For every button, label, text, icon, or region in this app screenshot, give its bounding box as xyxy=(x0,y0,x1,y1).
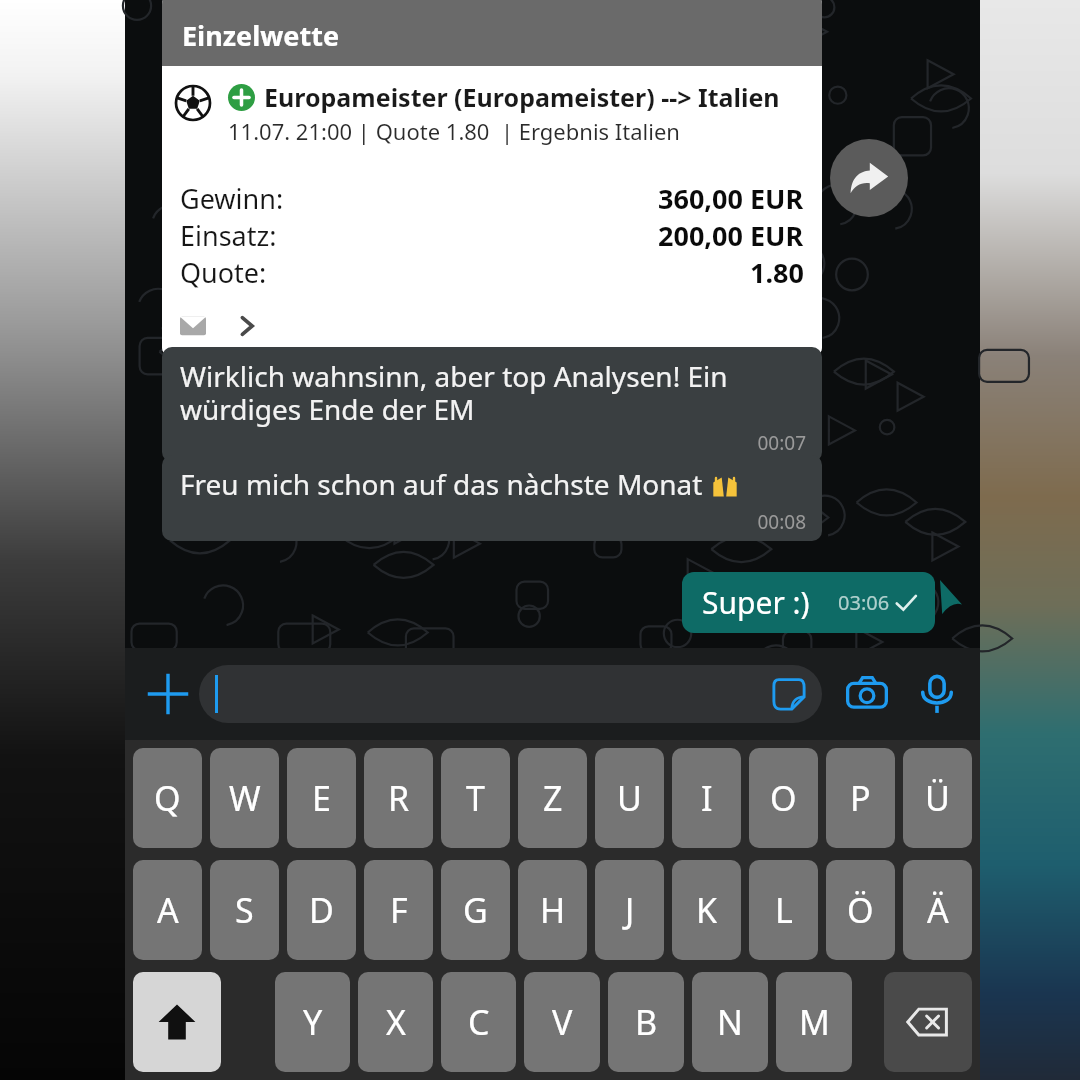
button[interactable]: Ä xyxy=(903,860,972,960)
staticText: K xyxy=(696,887,718,933)
staticText: X xyxy=(386,999,406,1045)
staticText: F xyxy=(390,887,408,933)
staticText: Wirklich wahnsinn, aber top Analysen! Ei… xyxy=(180,357,728,428)
staticText: 11.07. 21:00 | Quote 1.80 | Ergebnis Ita… xyxy=(228,116,680,146)
staticText: Quote: xyxy=(180,254,267,291)
button[interactable]: L xyxy=(749,860,818,960)
button[interactable]: Attach xyxy=(137,663,199,725)
button[interactable]: O xyxy=(749,748,818,848)
staticText: 360,00 EUR xyxy=(658,180,804,217)
button[interactable]: Super :) xyxy=(682,572,935,633)
staticText: 00:07 xyxy=(180,430,806,456)
button[interactable]: D xyxy=(287,860,356,960)
button[interactable]: K xyxy=(672,860,741,960)
staticText: P xyxy=(850,775,871,821)
button[interactable]: N xyxy=(692,972,768,1072)
staticText: Europameister (Europameister) --> Italie… xyxy=(264,80,780,114)
staticText: D xyxy=(309,887,334,933)
staticText: Gewinn: xyxy=(180,180,284,217)
staticText: J xyxy=(625,887,635,933)
button[interactable]: Backspace xyxy=(884,972,972,1072)
staticText: 200,00 EUR xyxy=(658,217,804,254)
staticText: Super :) xyxy=(702,582,810,623)
button[interactable]: E xyxy=(287,748,356,848)
staticText: Ä xyxy=(927,887,949,933)
button[interactable]: Z xyxy=(518,748,587,848)
button[interactable]: J xyxy=(595,860,664,960)
staticText: Ö xyxy=(847,887,874,933)
staticText: Ü xyxy=(925,775,950,821)
staticText: S xyxy=(235,887,254,933)
staticText: Einsatz: xyxy=(180,217,277,254)
staticText: T xyxy=(466,775,485,821)
staticText: Freu mich schon auf das nàchste Monat xyxy=(180,465,710,503)
staticText: V xyxy=(552,999,573,1045)
staticText: Einzelwette xyxy=(182,17,340,54)
button[interactable]: Freu mich schon auf das nàchste Monat xyxy=(162,455,822,541)
button[interactable]: Shift xyxy=(133,972,221,1072)
button[interactable]: P xyxy=(826,748,895,848)
button[interactable]: M xyxy=(776,972,852,1072)
staticText: M xyxy=(799,999,830,1045)
button[interactable]: A xyxy=(133,860,202,960)
staticText: Z xyxy=(543,775,563,821)
staticText: U xyxy=(617,775,642,821)
button[interactable]: Wirklich wahnsinn, aber top Analysen! Ei… xyxy=(162,347,822,462)
button[interactable]: Camera xyxy=(836,663,898,725)
staticText: R xyxy=(388,775,410,821)
button[interactable]: V xyxy=(524,972,600,1072)
staticText: O xyxy=(770,775,797,821)
button[interactable]: Q xyxy=(133,748,202,848)
button[interactable]: G xyxy=(441,860,510,960)
button[interactable]: W xyxy=(210,748,279,848)
button[interactable]: U xyxy=(595,748,664,848)
staticText: C xyxy=(468,999,490,1045)
staticText: N xyxy=(717,999,743,1045)
staticText: Y xyxy=(303,999,323,1045)
staticText: 03:06 xyxy=(838,589,890,616)
staticText: B xyxy=(635,999,658,1045)
button[interactable]: Share xyxy=(830,139,908,217)
staticText: A xyxy=(157,887,179,933)
staticText: H xyxy=(540,887,566,933)
button[interactable]: B xyxy=(608,972,684,1072)
button[interactable]: H xyxy=(518,860,587,960)
staticText: I xyxy=(701,775,713,821)
button[interactable]: F xyxy=(364,860,433,960)
button[interactable]: Ö xyxy=(826,860,895,960)
staticText: G xyxy=(463,887,488,933)
button[interactable]: Sticker xyxy=(770,675,808,713)
staticText: L xyxy=(775,887,793,933)
button[interactable]: I xyxy=(672,748,741,848)
staticText: 00:08 xyxy=(180,509,806,535)
button[interactable]: Einzelwette xyxy=(162,0,822,357)
button[interactable]: T xyxy=(441,748,510,848)
button[interactable]: Sticker xyxy=(199,665,822,723)
staticText: W xyxy=(229,775,261,821)
button[interactable]: R xyxy=(364,748,433,848)
staticText: Q xyxy=(154,775,181,821)
button[interactable]: X xyxy=(358,972,433,1072)
button[interactable]: Voice message xyxy=(906,663,968,725)
staticText: 1.80 xyxy=(750,254,804,291)
button[interactable]: Y xyxy=(275,972,350,1072)
button[interactable]: C xyxy=(441,972,516,1072)
button[interactable]: Ü xyxy=(903,748,972,848)
staticText: E xyxy=(312,775,331,821)
button[interactable]: S xyxy=(210,860,279,960)
